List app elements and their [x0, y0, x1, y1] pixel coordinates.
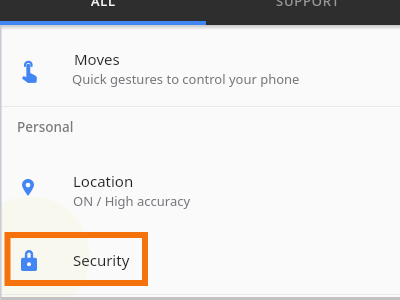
staticText: Security: [73, 250, 130, 270]
staticText: Personal: [17, 118, 74, 136]
button[interactable]: Location: [0, 147, 400, 217]
button[interactable]: ALL: [0, 0, 206, 25]
button[interactable]: Moves: [0, 26, 400, 106]
staticText: SUPPORT: [276, 0, 340, 10]
button[interactable]: Security: [0, 232, 400, 288]
staticText: ON / High accuracy: [73, 192, 191, 210]
staticText: Location: [73, 171, 134, 191]
staticText: Quick gestures to control your phone: [72, 70, 300, 88]
staticText: Moves: [74, 49, 120, 69]
staticText: ALL: [91, 0, 116, 10]
button[interactable]: SUPPORT: [206, 0, 400, 25]
